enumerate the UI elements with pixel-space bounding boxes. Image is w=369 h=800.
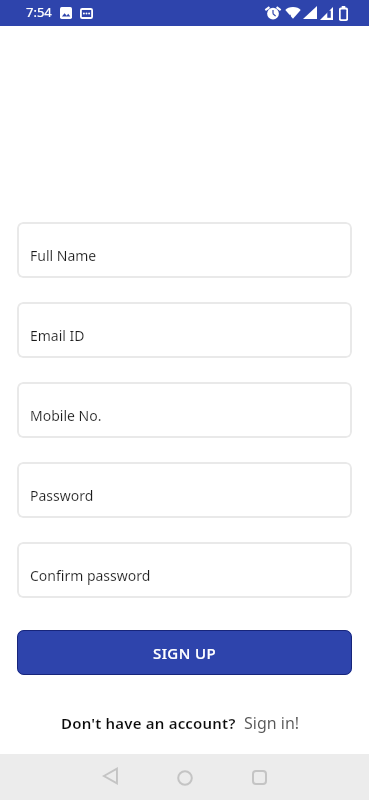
button[interactable]: Mobile No. xyxy=(17,382,352,438)
staticText: SIGN UP xyxy=(153,643,217,663)
staticText: Don't have an account? xyxy=(61,713,236,733)
staticText: Email ID xyxy=(30,326,85,345)
staticText: Full Name xyxy=(30,246,97,265)
button[interactable]: SIGN UP xyxy=(17,630,352,675)
staticText: Password xyxy=(30,486,94,505)
button[interactable]: Password xyxy=(17,462,352,518)
button[interactable]: Recent apps xyxy=(251,769,268,786)
button[interactable]: Back xyxy=(102,768,118,784)
staticText: Confirm password xyxy=(30,566,151,585)
staticText: 7:54 xyxy=(26,3,52,21)
staticText: Sign in! xyxy=(244,712,300,734)
button[interactable]: Confirm password xyxy=(17,542,352,598)
button[interactable]: Sign in! xyxy=(244,712,300,734)
button[interactable]: Email ID xyxy=(17,302,352,358)
staticText: Mobile No. xyxy=(30,406,102,425)
button[interactable]: Home xyxy=(176,769,193,786)
button[interactable]: Full Name xyxy=(17,222,352,278)
